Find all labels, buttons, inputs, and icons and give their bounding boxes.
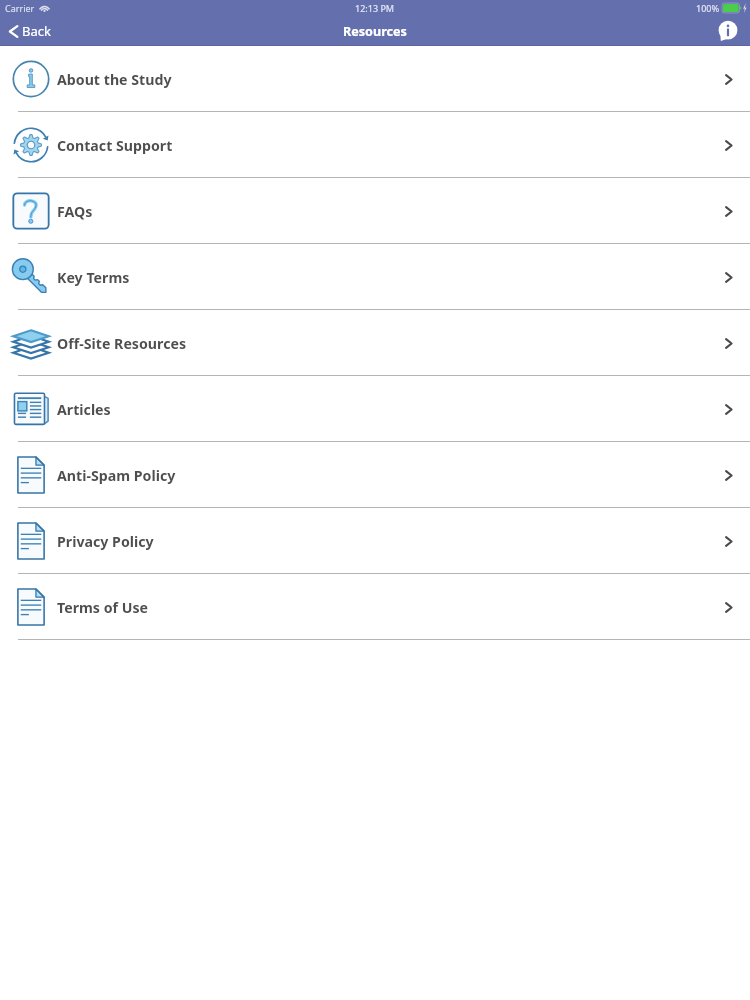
staticText: Off-Site Resources: [57, 334, 187, 353]
staticText: Terms of Use: [57, 598, 149, 617]
button[interactable]: Articles: [0, 376, 750, 442]
staticText: 100%: [696, 2, 720, 14]
button[interactable]: About the Study: [0, 46, 750, 112]
button[interactable]: FAQs: [0, 178, 750, 244]
button[interactable]: Off-Site Resources: [0, 310, 750, 376]
button[interactable]: Information: [718, 21, 738, 41]
button[interactable]: Contact Support: [0, 112, 750, 178]
staticText: Privacy Policy: [57, 532, 154, 551]
staticText: Key Terms: [57, 268, 130, 287]
staticText: About the Study: [57, 70, 172, 89]
button[interactable]: Back: [0, 18, 65, 44]
staticText: Articles: [57, 400, 111, 419]
staticText: Anti-Spam Policy: [57, 466, 176, 485]
staticText: 12:13 PM: [355, 2, 395, 14]
staticText: Back: [22, 22, 51, 40]
staticText: Carrier: [5, 2, 35, 14]
staticText: FAQs: [57, 202, 93, 221]
staticText: Resources: [343, 23, 407, 40]
button[interactable]: Key Terms: [0, 244, 750, 310]
staticText: Contact Support: [57, 136, 173, 155]
button[interactable]: Privacy Policy: [0, 508, 750, 574]
button[interactable]: Terms of Use: [0, 574, 750, 640]
button[interactable]: Anti-Spam Policy: [0, 442, 750, 508]
